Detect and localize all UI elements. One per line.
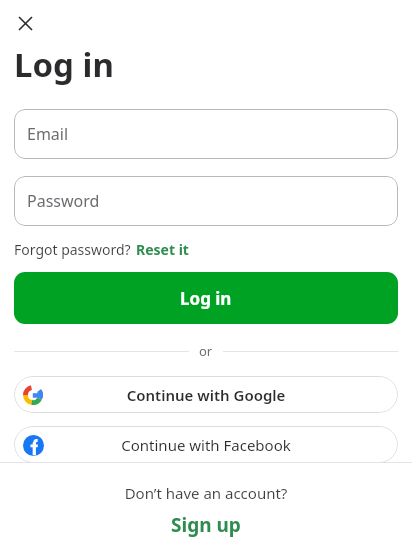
staticText: or	[199, 342, 213, 360]
staticText: Forgot password?	[14, 240, 131, 259]
button[interactable]: Continue with Facebook	[14, 426, 398, 463]
staticText: Log in	[14, 42, 114, 87]
button[interactable]: Continue with Google	[14, 376, 398, 413]
staticText: Password	[27, 190, 100, 212]
button[interactable]: Forgot password?	[14, 240, 189, 259]
staticText: Email	[27, 123, 69, 145]
button[interactable]: Log in	[14, 272, 398, 324]
button[interactable]: Email	[14, 109, 398, 159]
button[interactable]: Password	[14, 176, 398, 226]
button[interactable]: Close	[8, 6, 42, 40]
staticText: Sign up	[171, 512, 241, 538]
staticText: Don’t have an account?	[0, 483, 412, 503]
staticText: Log in	[180, 287, 232, 310]
button[interactable]: Sign up	[0, 512, 412, 538]
staticText: Continue with Facebook	[14, 435, 398, 455]
staticText: Reset it	[136, 240, 189, 259]
staticText: Continue with Google	[14, 385, 398, 405]
